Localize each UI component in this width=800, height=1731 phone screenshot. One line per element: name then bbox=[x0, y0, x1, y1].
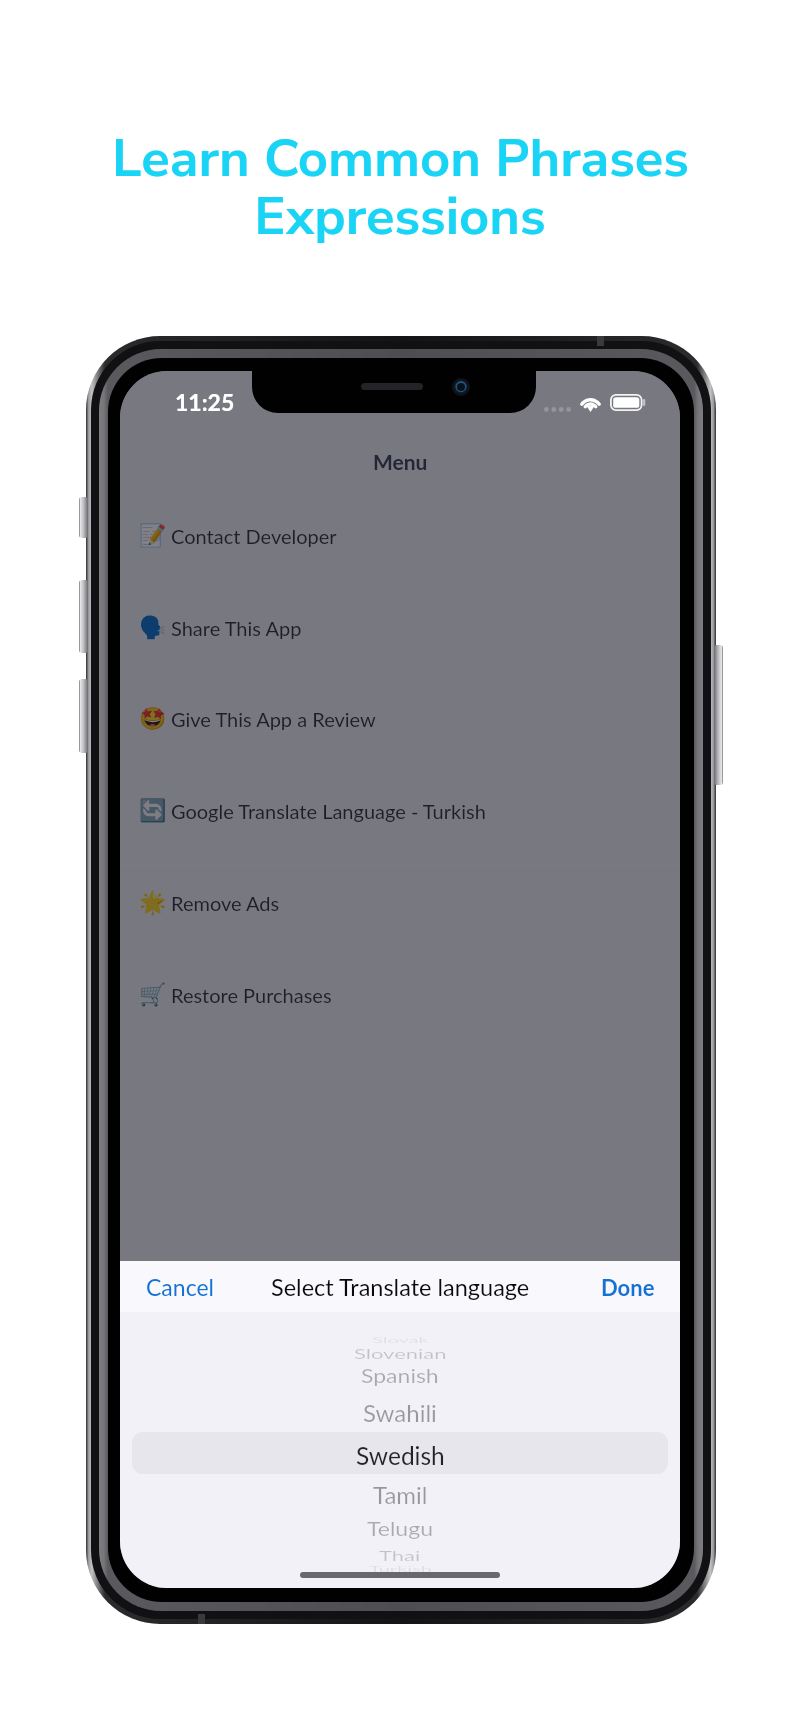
staticText: Thai bbox=[379, 1547, 421, 1563]
staticText: 🗣 bbox=[139, 615, 167, 641]
staticText: Google Translate Language - Turkish bbox=[171, 799, 486, 823]
staticText: Tamil bbox=[373, 1481, 428, 1508]
button[interactable]: 🤩 bbox=[120, 683, 680, 775]
button[interactable]: 🌟 bbox=[120, 865, 680, 956]
staticText: Swedish bbox=[356, 1441, 445, 1470]
staticText: 11:25 bbox=[175, 388, 235, 416]
staticText: Telugu bbox=[367, 1516, 433, 1540]
button[interactable]: Cancel bbox=[120, 1261, 240, 1312]
staticText: Done bbox=[601, 1274, 655, 1300]
staticText: 📝 bbox=[139, 523, 167, 549]
button[interactable]: 📝 bbox=[120, 498, 680, 590]
staticText: Turkish bbox=[369, 1564, 432, 1574]
staticText: Slovenian bbox=[354, 1345, 447, 1361]
staticText: Learn Common Phrases bbox=[112, 123, 689, 195]
staticText: 🌟 bbox=[139, 890, 167, 916]
staticText: Share This App bbox=[171, 616, 302, 640]
staticText: 🔄 bbox=[139, 798, 167, 824]
staticText: 🤩 bbox=[139, 706, 167, 732]
staticText: Menu bbox=[373, 449, 428, 474]
staticText: Give This App a Review bbox=[171, 707, 376, 731]
staticText: Select Translate language bbox=[271, 1273, 530, 1301]
button[interactable]: 🗣 bbox=[120, 590, 680, 683]
staticText: Spanish bbox=[361, 1363, 439, 1387]
staticText: Swahili bbox=[363, 1399, 437, 1426]
staticText: 🛒 bbox=[139, 982, 167, 1008]
button[interactable] bbox=[132, 1432, 668, 1474]
staticText: Slovak bbox=[372, 1335, 429, 1345]
button[interactable]: Done bbox=[576, 1262, 680, 1312]
staticText: Contact Developer bbox=[171, 524, 337, 548]
button[interactable]: 🛒 bbox=[120, 956, 680, 1046]
button[interactable]: 🔄 bbox=[120, 775, 680, 865]
staticText: Cancel bbox=[146, 1273, 214, 1300]
staticText: Restore Purchases bbox=[171, 983, 332, 1007]
staticText: Expressions bbox=[254, 181, 546, 253]
staticText: Remove Ads bbox=[171, 891, 280, 915]
